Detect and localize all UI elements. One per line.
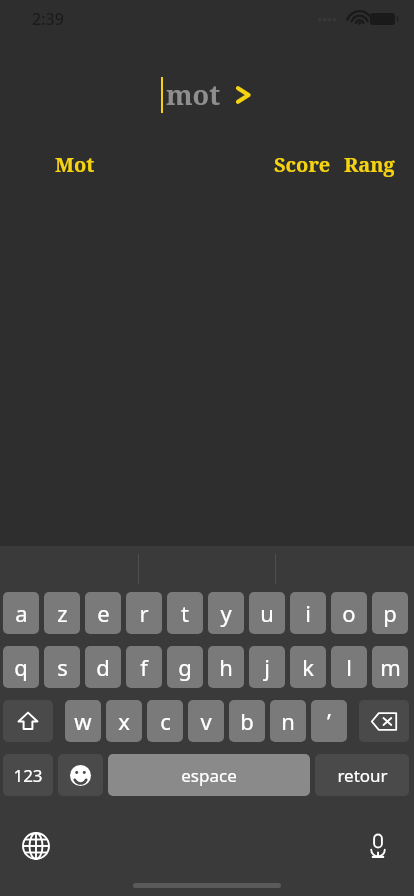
staticText: c [160,706,171,736]
button[interactable]: a [3,592,39,634]
staticText: j [264,652,270,682]
button[interactable]: 123 [3,754,53,796]
staticText: p [383,598,397,628]
staticText: x [118,706,130,736]
staticText: 2:39 [32,8,64,30]
button[interactable]: y [208,592,244,634]
staticText: w [74,706,92,736]
staticText: g [178,652,192,682]
button[interactable]: Dictation [356,824,400,868]
button[interactable]: Shift [3,700,53,742]
staticText: d [96,652,110,682]
staticText: a [15,598,28,628]
staticText: m [380,652,401,682]
staticText: Mot [55,151,95,178]
button[interactable]: t [167,592,203,634]
staticText: h [219,652,233,682]
button[interactable]: ’ [311,700,347,742]
button[interactable]: Backspace [359,700,409,742]
button[interactable]: r [126,592,162,634]
staticText: n [281,706,295,736]
button[interactable]: g [167,646,203,688]
button[interactable]: o [331,592,367,634]
button[interactable]: retour [315,754,409,796]
button[interactable]: Change keyboard language [14,824,58,868]
button[interactable]: espace [108,754,310,796]
staticText: v [200,706,212,736]
button[interactable]: z [44,592,80,634]
button[interactable]: u [249,592,285,634]
button[interactable]: q [3,646,39,688]
button[interactable]: p [372,592,408,634]
button[interactable]: k [290,646,326,688]
button[interactable]: n [270,700,306,742]
button[interactable]: b [229,700,265,742]
staticText: o [342,598,356,628]
button[interactable]: s [44,646,80,688]
staticText: y [220,598,232,628]
staticText: retour [337,764,388,787]
staticText: e [97,598,110,628]
button[interactable]: j [249,646,285,688]
button[interactable]: l [331,646,367,688]
staticText: ’ [327,706,331,736]
staticText: z [57,598,68,628]
staticText: mot [166,76,221,113]
staticText: b [240,706,254,736]
button[interactable]: h [208,646,244,688]
staticText: l [346,652,352,682]
staticText: r [139,598,149,628]
button[interactable]: x [106,700,142,742]
staticText: espace [181,764,237,787]
button[interactable]: f [126,646,162,688]
staticText: i [305,598,311,628]
staticText: q [14,652,28,682]
staticText: t [181,598,189,628]
staticText: k [302,652,314,682]
button[interactable]: e [85,592,121,634]
staticText: Rang [344,151,395,178]
staticText: f [140,652,148,682]
staticText: s [57,652,68,682]
staticText: 123 [13,764,43,787]
button[interactable]: Emoji [58,754,103,796]
button[interactable]: i [290,592,326,634]
button[interactable]: d [85,646,121,688]
button[interactable]: mot [0,44,414,144]
button[interactable]: v [188,700,224,742]
staticText: Score [274,151,331,178]
button[interactable]: c [147,700,183,742]
button[interactable]: w [65,700,101,742]
button[interactable]: m [372,646,408,688]
staticText: u [260,598,274,628]
